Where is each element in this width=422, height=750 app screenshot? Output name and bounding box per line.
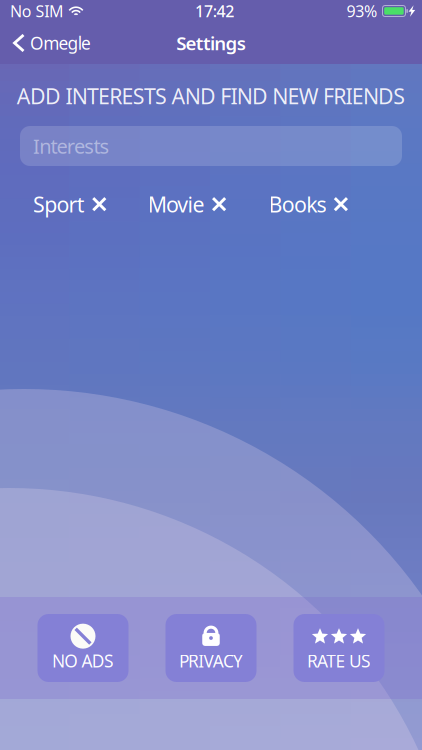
- staticText: RATE US: [307, 649, 371, 672]
- staticText: Sport: [33, 190, 85, 218]
- staticText: Books: [269, 190, 326, 218]
- button[interactable]: Sport: [33, 190, 148, 218]
- staticText: Movie: [148, 190, 205, 218]
- staticText: Interests: [33, 133, 110, 159]
- staticText: Settings: [176, 31, 246, 55]
- staticText: ADD INTERESTS AND FIND NEW FRIENDS: [17, 82, 405, 110]
- button[interactable]: NO ADS: [37, 614, 128, 682]
- button[interactable]: RATE US: [293, 614, 384, 682]
- staticText: NO ADS: [52, 649, 114, 672]
- button[interactable]: Books: [269, 190, 348, 218]
- button[interactable]: PRIVACY: [165, 614, 256, 682]
- button[interactable]: Movie: [148, 190, 269, 218]
- staticText: PRIVACY: [179, 649, 243, 672]
- button[interactable]: Omegle: [0, 25, 91, 60]
- staticText: 93%: [346, 0, 377, 22]
- button[interactable]: Interests: [20, 126, 402, 166]
- staticText: 17:42: [195, 0, 234, 22]
- staticText: No SIM: [10, 0, 64, 22]
- staticText: Omegle: [30, 31, 91, 54]
